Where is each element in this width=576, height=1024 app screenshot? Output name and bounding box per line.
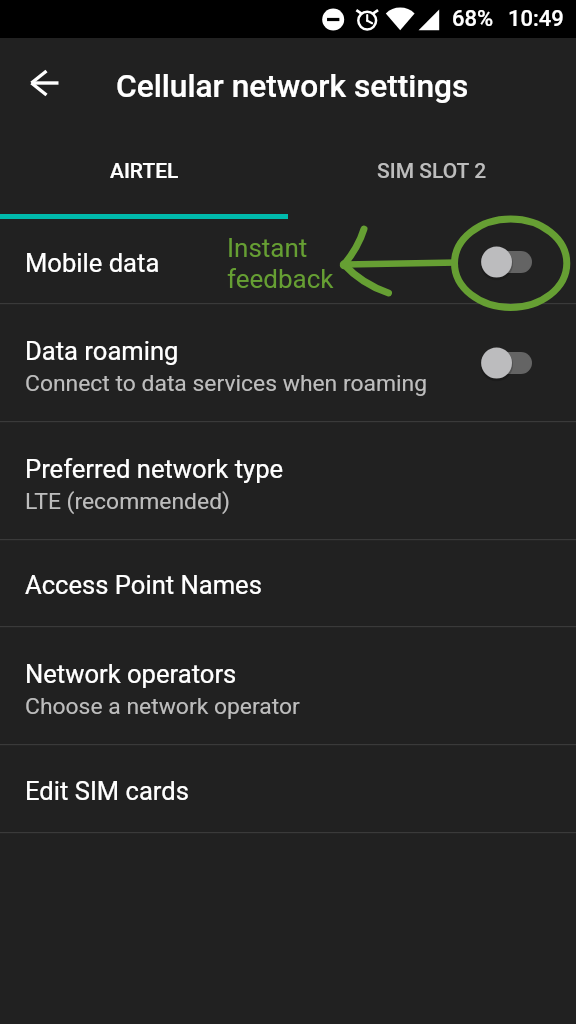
staticText: Network operators xyxy=(25,659,237,689)
button[interactable]: Access Point Names xyxy=(0,540,576,627)
staticText: Edit SIM cards xyxy=(25,776,189,806)
button[interactable]: SIM SLOT 2 xyxy=(288,128,576,214)
button[interactable]: Mobile data xyxy=(0,219,576,304)
staticText: 10:49 xyxy=(508,6,564,32)
staticText: Instant xyxy=(227,233,308,263)
staticText: Choose a network operator xyxy=(25,693,300,720)
staticText: Access Point Names xyxy=(25,570,262,600)
button[interactable]: Navigate up xyxy=(18,56,72,110)
staticText: feedback xyxy=(227,264,334,294)
button[interactable]: Data roaming xyxy=(0,304,576,422)
button[interactable]: Mobile data switch xyxy=(471,238,543,286)
staticText: Cellular network settings xyxy=(116,68,469,105)
staticText: LTE (recommended) xyxy=(25,488,231,515)
staticText: AIRTEL xyxy=(110,159,179,184)
staticText: Data roaming xyxy=(25,336,179,366)
staticText: 68% xyxy=(452,6,494,32)
button[interactable]: Network operators xyxy=(0,627,576,745)
button[interactable]: Data roaming switch xyxy=(471,339,543,387)
staticText: SIM SLOT 2 xyxy=(377,159,487,184)
button[interactable]: Preferred network type xyxy=(0,422,576,540)
staticText: Mobile data xyxy=(25,248,160,278)
button[interactable]: Edit SIM cards xyxy=(0,745,576,833)
staticText: Preferred network type xyxy=(25,454,284,484)
staticText: Connect to data services when roaming xyxy=(25,370,428,397)
button[interactable]: AIRTEL xyxy=(0,128,288,214)
